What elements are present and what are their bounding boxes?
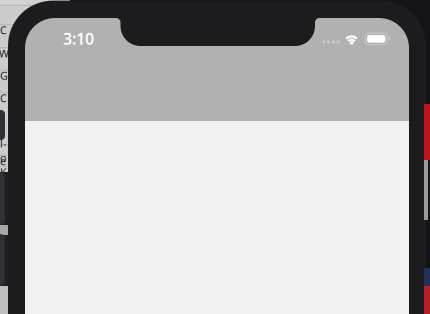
staticText: 3:10 <box>63 28 94 49</box>
staticText: K <box>0 165 7 179</box>
staticText: G <box>0 69 8 83</box>
staticText: W <box>0 46 9 60</box>
staticText: lo <box>0 136 6 165</box>
staticText: e <box>0 154 6 168</box>
staticText: C <box>0 23 7 37</box>
staticText: C <box>0 91 7 105</box>
